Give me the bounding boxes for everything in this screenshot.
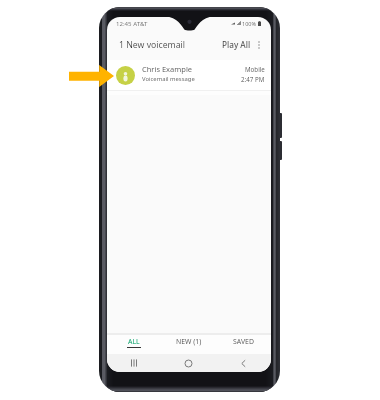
staticText: SAVED: [233, 337, 254, 346]
staticText: Play All: [222, 39, 251, 50]
button[interactable]: Back: [216, 354, 271, 372]
staticText: 2:47 PM: [241, 75, 265, 83]
other: Pointer arrow: [69, 65, 114, 87]
staticText: ALL: [128, 337, 140, 346]
button[interactable]: More options: [253, 39, 265, 51]
button[interactable]: NEW (1): [161, 335, 216, 354]
staticText: NEW (1): [176, 337, 202, 346]
staticText: 100%: [242, 20, 257, 27]
button[interactable]: SAVED: [216, 335, 271, 354]
staticText: Voicemail message: [142, 75, 195, 83]
staticText: Mobile: [245, 65, 265, 73]
staticText: Chris Example: [142, 64, 193, 74]
button[interactable]: Recents: [107, 354, 161, 372]
button[interactable]: Chris Example: [107, 60, 271, 90]
button[interactable]: Home: [161, 354, 216, 372]
button[interactable]: Play All: [220, 35, 253, 54]
staticText: 1 New voicemail: [119, 39, 186, 51]
staticText: 12:45 AT&T: [116, 19, 148, 27]
button[interactable]: ALL: [107, 335, 161, 354]
